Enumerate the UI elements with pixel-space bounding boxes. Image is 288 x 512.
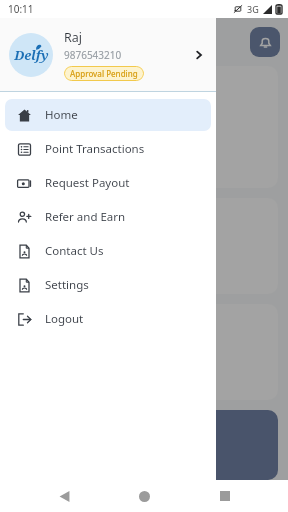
- button[interactable]: Home: [127, 480, 161, 512]
- staticText: Settings: [45, 277, 89, 293]
- staticText: Contact Us: [45, 243, 104, 259]
- button[interactable]: Request Payout: [5, 167, 211, 199]
- button[interactable]: Logout: [5, 303, 211, 335]
- staticText: 10:11: [8, 2, 34, 16]
- button[interactable]: Delfy: [0, 18, 216, 91]
- staticText: 3G: [247, 3, 259, 15]
- button[interactable]: Back: [47, 480, 81, 512]
- button[interactable]: Settings: [5, 269, 211, 301]
- staticText: Home: [45, 107, 78, 123]
- staticText: Delfy: [14, 46, 49, 64]
- button[interactable]: Point Transactions: [5, 133, 211, 165]
- staticText: Raj: [64, 29, 83, 46]
- button[interactable]: Notifications: [250, 27, 280, 57]
- staticText: 9876543210: [64, 48, 122, 62]
- button[interactable]: Open profile: [190, 46, 208, 64]
- button[interactable]: Refer and Earn: [5, 201, 211, 233]
- staticText: Logout: [45, 311, 84, 327]
- button[interactable]: Contact Us: [5, 235, 211, 267]
- button[interactable]: Recent apps: [208, 480, 242, 512]
- staticText: Refer and Earn: [45, 209, 126, 225]
- button[interactable]: Home: [5, 99, 211, 131]
- staticText: Approval Pending: [70, 68, 138, 79]
- staticText: Request Payout: [45, 175, 130, 191]
- staticText: Point Transactions: [45, 141, 145, 157]
- staticText: Total Referrals: [20, 267, 95, 282]
